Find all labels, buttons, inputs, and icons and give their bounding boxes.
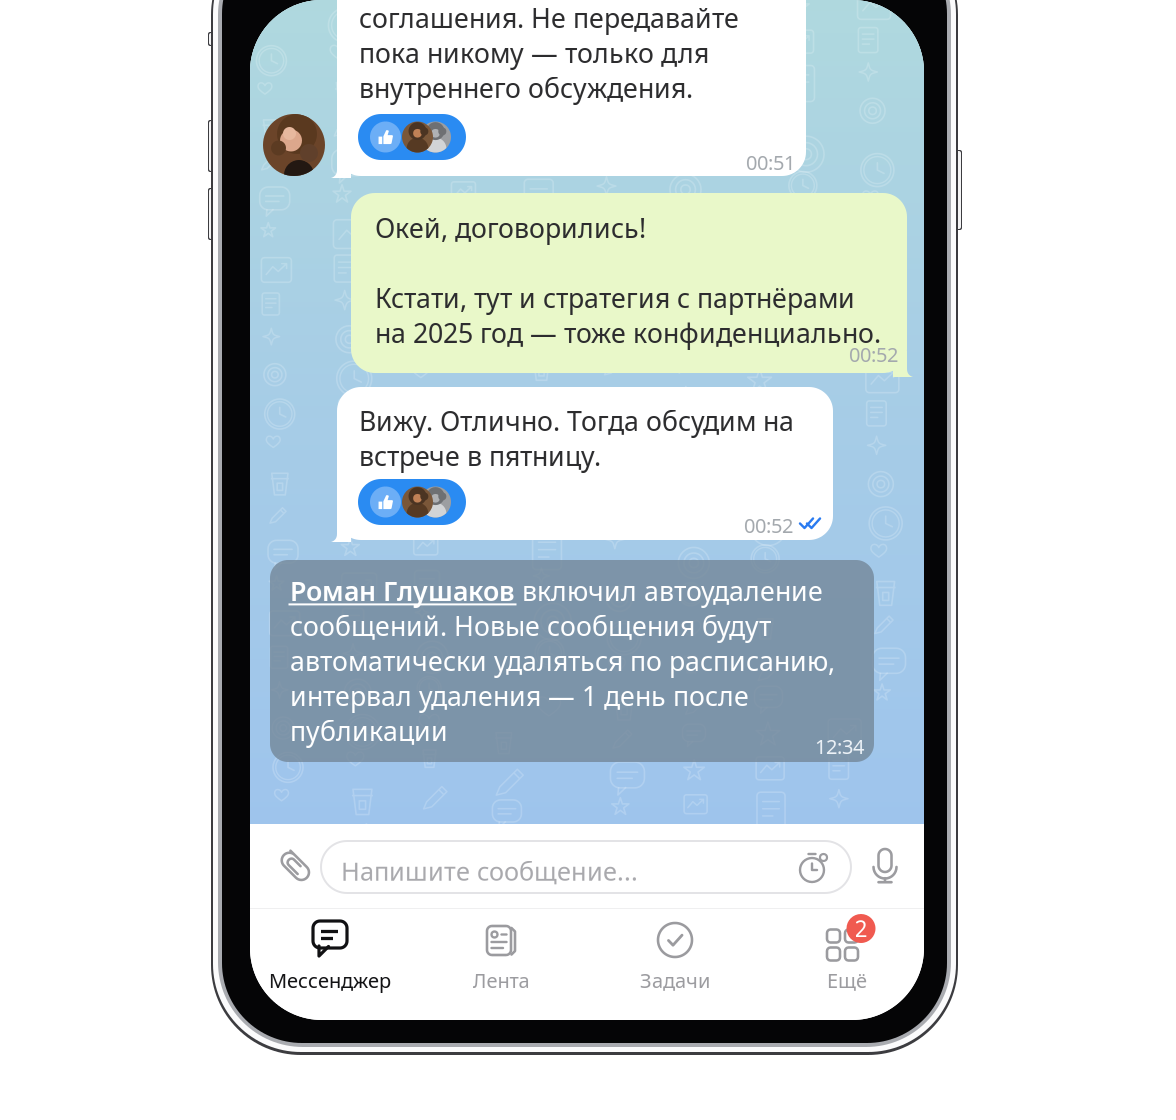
staticText: на 2025 год — тоже конфиденциально. <box>375 315 881 350</box>
staticText: Лента <box>472 967 529 994</box>
staticText: встрече в пятницу. <box>359 438 601 473</box>
staticText: Мессенджер <box>269 967 391 994</box>
button[interactable]: Задачи <box>590 908 760 1020</box>
staticText: Вижу. Отлично. Тогда обсудим на <box>359 403 794 438</box>
staticText: включил автоудаление <box>515 573 823 608</box>
button[interactable]: Мессенджер <box>245 908 415 1020</box>
button[interactable]: Message timer <box>792 840 838 894</box>
staticText: Задачи <box>640 967 710 994</box>
staticText: Ещё <box>827 967 867 994</box>
staticText: 00:52 <box>849 341 898 368</box>
staticText: Роман Глушаков <box>290 573 515 608</box>
button[interactable]: 2 <box>762 908 932 1020</box>
staticText: сообщений. Новые сообщения будут <box>290 608 771 643</box>
button[interactable]: Лента <box>416 908 586 1020</box>
staticText: 2 <box>854 913 867 943</box>
button[interactable]: Attach file <box>263 824 327 908</box>
staticText: 00:51 <box>746 149 795 176</box>
staticText: Окей, договорились! <box>375 210 646 245</box>
staticText: соглашения. Не передавайте <box>359 0 739 35</box>
staticText: внутреннего обсуждения. <box>359 70 693 105</box>
staticText: 12:34 <box>815 733 864 760</box>
staticText: публикации <box>290 713 448 748</box>
staticText: пока никому — только для <box>359 35 709 70</box>
button[interactable]: Record voice message <box>854 824 916 908</box>
staticText: 00:52 <box>744 512 793 539</box>
staticText: автоматически удаляться по расписанию, <box>290 643 835 678</box>
staticText: интервал удаления — 1 день после <box>290 678 749 713</box>
staticText: Напишите сообщение... <box>341 854 638 888</box>
staticText: Кстати, тут и стратегия с партнёрами <box>375 280 855 315</box>
